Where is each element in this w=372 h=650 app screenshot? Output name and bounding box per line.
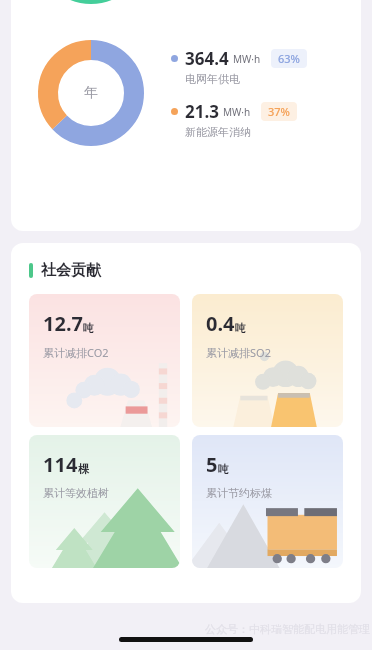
staticText: 114	[43, 451, 78, 478]
button[interactable]: 5	[192, 435, 343, 568]
staticText: 棵	[78, 462, 89, 476]
staticText: 累计等效植树	[43, 486, 109, 500]
staticText: MW·h	[223, 105, 251, 119]
staticText: 社会贡献	[41, 261, 101, 280]
staticText: 12.7	[43, 310, 83, 337]
button[interactable]: 12.7	[29, 294, 180, 427]
staticText: 37%	[268, 104, 290, 119]
staticText: 累计节约标煤	[206, 486, 272, 500]
button[interactable]: 0.4	[192, 294, 343, 427]
staticText: 吨	[83, 321, 94, 335]
staticText: 0.4	[206, 310, 235, 337]
staticText: MW·h	[233, 52, 261, 66]
staticText: 63%	[278, 51, 300, 66]
staticText: 新能源年消纳	[185, 125, 251, 139]
staticText: 公众号：中科瑞智能配电用能管理	[205, 622, 370, 636]
staticText: 电网年供电	[185, 72, 240, 86]
staticText: 5	[206, 451, 218, 478]
staticText: 吨	[218, 462, 229, 476]
staticText: 364.4	[185, 47, 229, 70]
staticText: 年	[84, 84, 98, 102]
staticText: 21.3	[185, 100, 219, 123]
staticText: 吨	[235, 321, 246, 335]
button[interactable]: 114	[29, 435, 180, 568]
staticText: 累计减排CO2	[43, 345, 109, 360]
staticText: 累计减排SO2	[206, 345, 271, 360]
